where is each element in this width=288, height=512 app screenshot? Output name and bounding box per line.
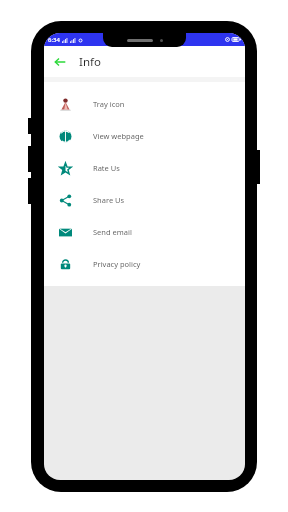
button[interactable]: Rate Us — [44, 152, 245, 184]
staticText: 6:34 — [48, 36, 60, 44]
button[interactable]: Tray icon — [44, 88, 245, 120]
staticText: Send email — [93, 227, 132, 237]
staticText: Privacy policy — [93, 259, 141, 269]
button[interactable]: Send email — [44, 216, 245, 248]
staticText: Rate Us — [93, 163, 120, 173]
button[interactable]: View webpage — [44, 120, 245, 152]
button[interactable]: Back — [49, 51, 71, 73]
staticText: View webpage — [93, 131, 144, 141]
staticText: Tray icon — [93, 99, 125, 109]
button[interactable]: Privacy policy — [44, 248, 245, 280]
button[interactable]: Share Us — [44, 184, 245, 216]
staticText: Info — [79, 54, 101, 70]
staticText: Share Us — [93, 195, 125, 205]
